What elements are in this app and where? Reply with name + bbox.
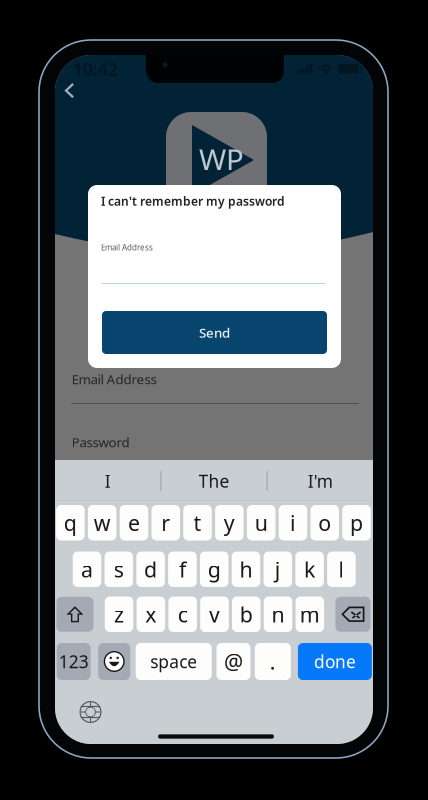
staticText: w bbox=[94, 509, 111, 537]
staticText: Password bbox=[72, 433, 130, 451]
button[interactable]: Back bbox=[55, 77, 83, 105]
button[interactable]: m bbox=[296, 596, 324, 632]
button[interactable]: w bbox=[88, 505, 116, 540]
button[interactable]: i bbox=[279, 505, 307, 540]
staticText: t bbox=[194, 509, 202, 537]
staticText: I'm bbox=[308, 469, 333, 492]
staticText: h bbox=[239, 555, 252, 583]
button[interactable]: Switch keyboard bbox=[79, 701, 101, 723]
button[interactable]: x bbox=[137, 596, 165, 632]
button[interactable]: j bbox=[264, 551, 292, 587]
staticText: The bbox=[198, 469, 229, 492]
button[interactable]: y bbox=[215, 505, 244, 540]
button[interactable]: r bbox=[151, 505, 180, 540]
staticText: WP bbox=[199, 139, 244, 178]
button[interactable]: done bbox=[298, 643, 372, 680]
button[interactable]: e bbox=[120, 505, 148, 540]
staticText: e bbox=[128, 509, 140, 537]
button[interactable]: d bbox=[136, 551, 165, 587]
button[interactable]: u bbox=[247, 505, 275, 540]
button[interactable]: l bbox=[327, 551, 356, 587]
staticText: Email Address bbox=[101, 242, 153, 253]
button[interactable]: g bbox=[200, 551, 228, 587]
button[interactable]: . bbox=[255, 643, 291, 680]
button[interactable]: q bbox=[56, 505, 85, 540]
staticText: I can't remember my password bbox=[101, 193, 285, 209]
button[interactable]: Delete bbox=[335, 597, 370, 632]
button[interactable]: f bbox=[168, 551, 197, 587]
button[interactable]: k bbox=[295, 551, 324, 587]
button[interactable]: space bbox=[136, 643, 212, 680]
button[interactable]: z bbox=[105, 596, 133, 632]
staticText: g bbox=[208, 555, 221, 583]
staticText: I bbox=[105, 469, 111, 492]
staticText: c bbox=[178, 600, 188, 628]
staticText: b bbox=[240, 600, 253, 628]
staticText: q bbox=[64, 509, 77, 537]
staticText: s bbox=[114, 555, 124, 583]
staticText: i bbox=[290, 509, 296, 537]
staticText: a bbox=[81, 555, 93, 583]
staticText: Email Address bbox=[72, 370, 157, 388]
staticText: m bbox=[300, 600, 320, 628]
staticText: 123 bbox=[59, 650, 89, 673]
button[interactable]: c bbox=[168, 596, 197, 632]
button[interactable]: I bbox=[55, 463, 160, 499]
button[interactable]: n bbox=[264, 596, 292, 632]
button[interactable]: The bbox=[161, 463, 267, 499]
staticText: d bbox=[144, 555, 157, 583]
button[interactable]: p bbox=[342, 505, 371, 540]
button[interactable]: Send bbox=[102, 311, 327, 354]
button[interactable]: a bbox=[73, 551, 101, 587]
button[interactable]: o bbox=[310, 505, 339, 540]
staticText: z bbox=[114, 600, 124, 628]
button[interactable]: b bbox=[232, 596, 260, 632]
staticText: @ bbox=[224, 647, 243, 676]
button[interactable]: Emoji bbox=[98, 643, 130, 680]
button[interactable]: t bbox=[183, 505, 212, 540]
staticText: j bbox=[275, 555, 281, 583]
staticText: 10:42 bbox=[73, 57, 118, 80]
button[interactable]: h bbox=[232, 551, 260, 587]
staticText: . bbox=[270, 647, 276, 676]
staticText: l bbox=[338, 555, 344, 583]
button[interactable]: @ bbox=[216, 643, 250, 680]
staticText: u bbox=[255, 509, 268, 537]
button[interactable]: v bbox=[200, 596, 229, 632]
staticText: x bbox=[145, 600, 156, 628]
staticText: n bbox=[271, 600, 284, 628]
button[interactable]: Shift bbox=[56, 597, 93, 632]
staticText: o bbox=[318, 509, 331, 537]
staticText: space bbox=[150, 650, 197, 673]
button[interactable]: I'm bbox=[268, 463, 373, 499]
staticText: f bbox=[179, 555, 186, 583]
staticText: p bbox=[350, 509, 363, 537]
staticText: y bbox=[224, 509, 235, 537]
button[interactable]: 123 bbox=[57, 643, 91, 680]
button[interactable]: s bbox=[105, 551, 133, 587]
staticText: k bbox=[304, 555, 315, 583]
staticText: Send bbox=[199, 324, 230, 341]
staticText: v bbox=[209, 600, 220, 628]
staticText: done bbox=[314, 650, 356, 673]
staticText: r bbox=[161, 509, 170, 537]
